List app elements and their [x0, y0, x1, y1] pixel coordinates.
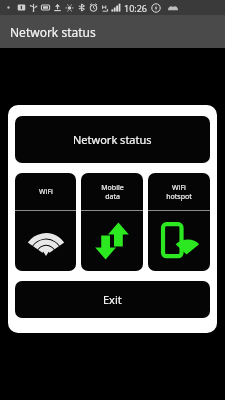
staticText: Network status: [10, 24, 96, 40]
button[interactable]: WiFi: [15, 173, 76, 271]
staticText: WiFi: [39, 187, 53, 197]
staticText: Mobile data: [101, 183, 124, 201]
staticText: Network status: [73, 132, 152, 147]
button[interactable]: Exit: [15, 281, 210, 318]
staticText: Exit: [103, 292, 122, 307]
staticText: WiFi hotspot: [166, 183, 192, 201]
button[interactable]: Mobile data: [81, 173, 143, 271]
staticText: 10:26: [124, 2, 148, 14]
button[interactable]: Network status: [15, 116, 210, 163]
button[interactable]: WiFi hotspot: [148, 173, 210, 271]
